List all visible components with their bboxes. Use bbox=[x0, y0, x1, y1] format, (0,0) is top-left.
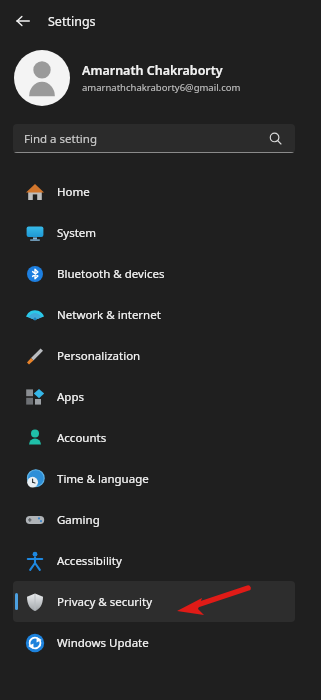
button[interactable]: Time & language bbox=[13, 458, 295, 499]
staticText: Windows Update bbox=[57, 635, 149, 651]
staticText: Settings bbox=[48, 13, 96, 30]
button[interactable]: Personalization bbox=[13, 335, 295, 376]
button[interactable]: Accounts bbox=[13, 417, 295, 458]
staticText: System bbox=[57, 225, 97, 241]
staticText: Accessibility bbox=[57, 553, 122, 569]
staticText: Find a setting bbox=[24, 131, 97, 147]
staticText: Network & internet bbox=[57, 307, 161, 323]
button[interactable]: Gaming bbox=[13, 499, 295, 540]
staticText: Gaming bbox=[57, 512, 100, 528]
button[interactable]: Privacy & security bbox=[13, 581, 295, 622]
staticText: Home bbox=[57, 184, 90, 200]
staticText: Accounts bbox=[57, 430, 107, 446]
button[interactable]: Amarnath Chakraborty bbox=[14, 42, 307, 114]
button[interactable]: System bbox=[13, 212, 295, 253]
staticText: Amarnath Chakraborty bbox=[82, 62, 223, 79]
staticText: amarnathchakraborty6@gmail.com bbox=[82, 81, 241, 94]
button[interactable]: Find a setting bbox=[13, 124, 295, 153]
staticText: Time & language bbox=[57, 471, 149, 487]
button[interactable]: Accessibility bbox=[13, 540, 295, 581]
button[interactable]: Home bbox=[13, 171, 295, 212]
button[interactable]: Back bbox=[10, 8, 36, 34]
staticText: Bluetooth & devices bbox=[57, 266, 165, 282]
button[interactable]: Network & internet bbox=[13, 294, 295, 335]
button[interactable]: Windows Update bbox=[13, 622, 295, 663]
staticText: Personalization bbox=[57, 348, 141, 364]
button[interactable]: Bluetooth & devices bbox=[13, 253, 295, 294]
button[interactable]: Apps bbox=[13, 376, 295, 417]
staticText: Apps bbox=[57, 389, 85, 405]
staticText: Privacy & security bbox=[57, 594, 153, 610]
